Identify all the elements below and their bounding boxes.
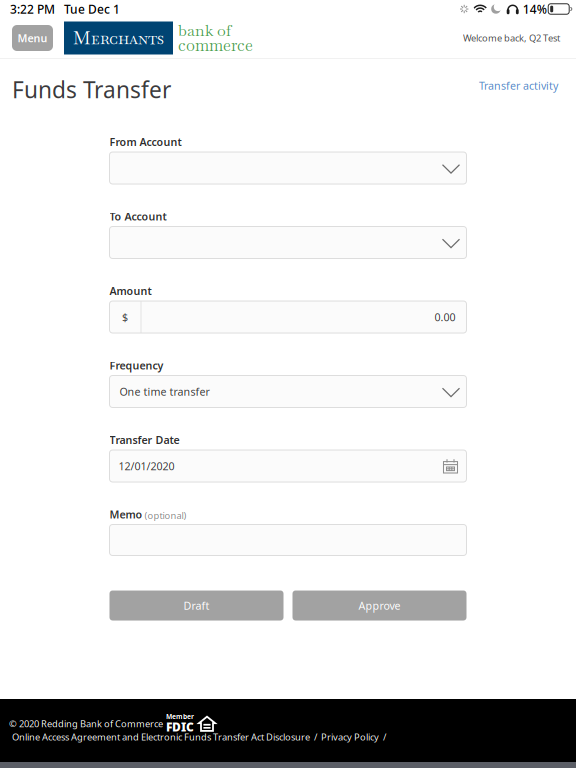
staticText: Tue Dec 1 <box>64 1 120 17</box>
staticText: Transfer activity <box>479 78 558 93</box>
staticText: $ <box>122 310 128 324</box>
button[interactable]: 12/01/2020 <box>109 450 466 482</box>
button[interactable]: One time transfer <box>109 375 466 407</box>
staticText: Menu <box>17 31 47 45</box>
staticText: Approve <box>358 598 400 613</box>
button[interactable]: Approve <box>292 590 466 620</box>
staticText: 12/01/2020 <box>118 459 174 473</box>
button[interactable]: Menu <box>12 25 53 51</box>
staticText: From Account <box>109 135 181 149</box>
staticText: © 2020 Redding Bank of Commerce <box>9 717 163 730</box>
staticText: 0.00 <box>434 310 455 324</box>
staticText: Member <box>166 712 194 721</box>
staticText: Memo <box>109 507 142 521</box>
staticText: FDIC <box>166 719 194 735</box>
staticText: bank of <box>178 20 231 41</box>
staticText: (optional) <box>142 509 186 521</box>
staticText: Frequency <box>109 358 163 372</box>
staticText: Transfer Date <box>109 433 179 447</box>
staticText: 14% <box>523 1 547 17</box>
staticText: Amount <box>109 284 151 298</box>
staticText: Merchants <box>73 26 164 50</box>
staticText: commerce <box>178 35 253 56</box>
staticText: Welcome back, Q2 Test <box>463 32 560 44</box>
staticText: 3:22 PM <box>10 1 55 17</box>
button[interactable]: Draft <box>109 590 283 620</box>
button[interactable]: Transfer activity <box>479 78 576 93</box>
staticText: Funds Transfer <box>12 74 171 104</box>
button[interactable] <box>109 152 466 184</box>
button[interactable] <box>109 226 466 258</box>
staticText: Draft <box>183 598 209 613</box>
staticText: Online Access Agreement and Electronic F… <box>12 731 386 743</box>
staticText: One time transfer <box>119 384 209 399</box>
staticText: To Account <box>109 209 166 223</box>
